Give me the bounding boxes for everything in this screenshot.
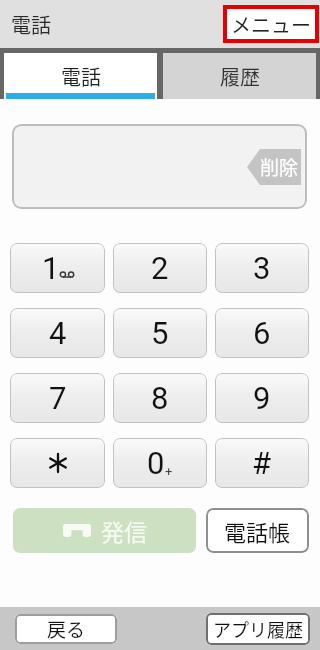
- staticText: +: [165, 464, 173, 479]
- button[interactable]: メニュー: [227, 9, 315, 39]
- staticText: 削除: [260, 153, 299, 181]
- button[interactable]: 電話帳: [206, 508, 309, 553]
- staticText: 4: [49, 315, 67, 351]
- button[interactable]: 8: [113, 373, 207, 423]
- button[interactable]: 5: [113, 308, 207, 358]
- button[interactable]: 2: [113, 243, 207, 293]
- staticText: 履歴: [220, 62, 260, 91]
- staticText: 電話: [11, 10, 51, 39]
- staticText: 5: [151, 315, 169, 351]
- staticText: 3: [253, 250, 271, 286]
- staticText: #: [252, 445, 272, 481]
- button[interactable]: 削除: [247, 149, 301, 185]
- staticText: アプリ履歴: [213, 616, 303, 642]
- staticText: 8: [151, 380, 169, 416]
- staticText: 電話: [61, 62, 101, 91]
- staticText: 1: [42, 250, 60, 286]
- button[interactable]: 発信: [13, 508, 196, 553]
- button[interactable]: 履歴: [163, 53, 316, 99]
- staticText: 0: [147, 445, 165, 481]
- button[interactable]: 3: [215, 243, 309, 293]
- staticText: 7: [49, 380, 67, 416]
- button[interactable]: 戻る: [15, 614, 117, 644]
- button[interactable]: 1: [10, 243, 105, 293]
- button[interactable]: アプリ履歴: [206, 613, 310, 645]
- button[interactable]: #: [215, 438, 309, 488]
- staticText: 6: [253, 315, 271, 351]
- button[interactable]: [10, 438, 105, 488]
- button[interactable]: 9: [215, 373, 309, 423]
- staticText: 電話帳: [224, 515, 291, 547]
- staticText: 9: [253, 380, 271, 416]
- button[interactable]: 7: [10, 373, 105, 423]
- staticText: メニュー: [231, 10, 311, 39]
- button[interactable]: 電話: [4, 53, 157, 99]
- button[interactable]: 0: [113, 438, 207, 488]
- staticText: 戻る: [47, 615, 86, 643]
- staticText: 2: [151, 250, 169, 286]
- button[interactable]: 6: [215, 308, 309, 358]
- button[interactable]: 4: [10, 308, 105, 358]
- staticText: 発信: [101, 514, 147, 547]
